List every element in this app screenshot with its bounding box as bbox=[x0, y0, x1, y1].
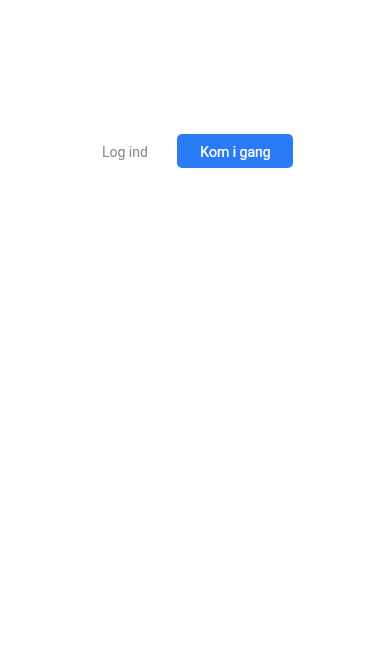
button[interactable]: Kom i gang bbox=[177, 134, 293, 168]
staticText: Log ind bbox=[102, 144, 148, 160]
staticText: Kom i gang bbox=[200, 144, 271, 160]
button[interactable]: Log ind bbox=[94, 134, 156, 168]
